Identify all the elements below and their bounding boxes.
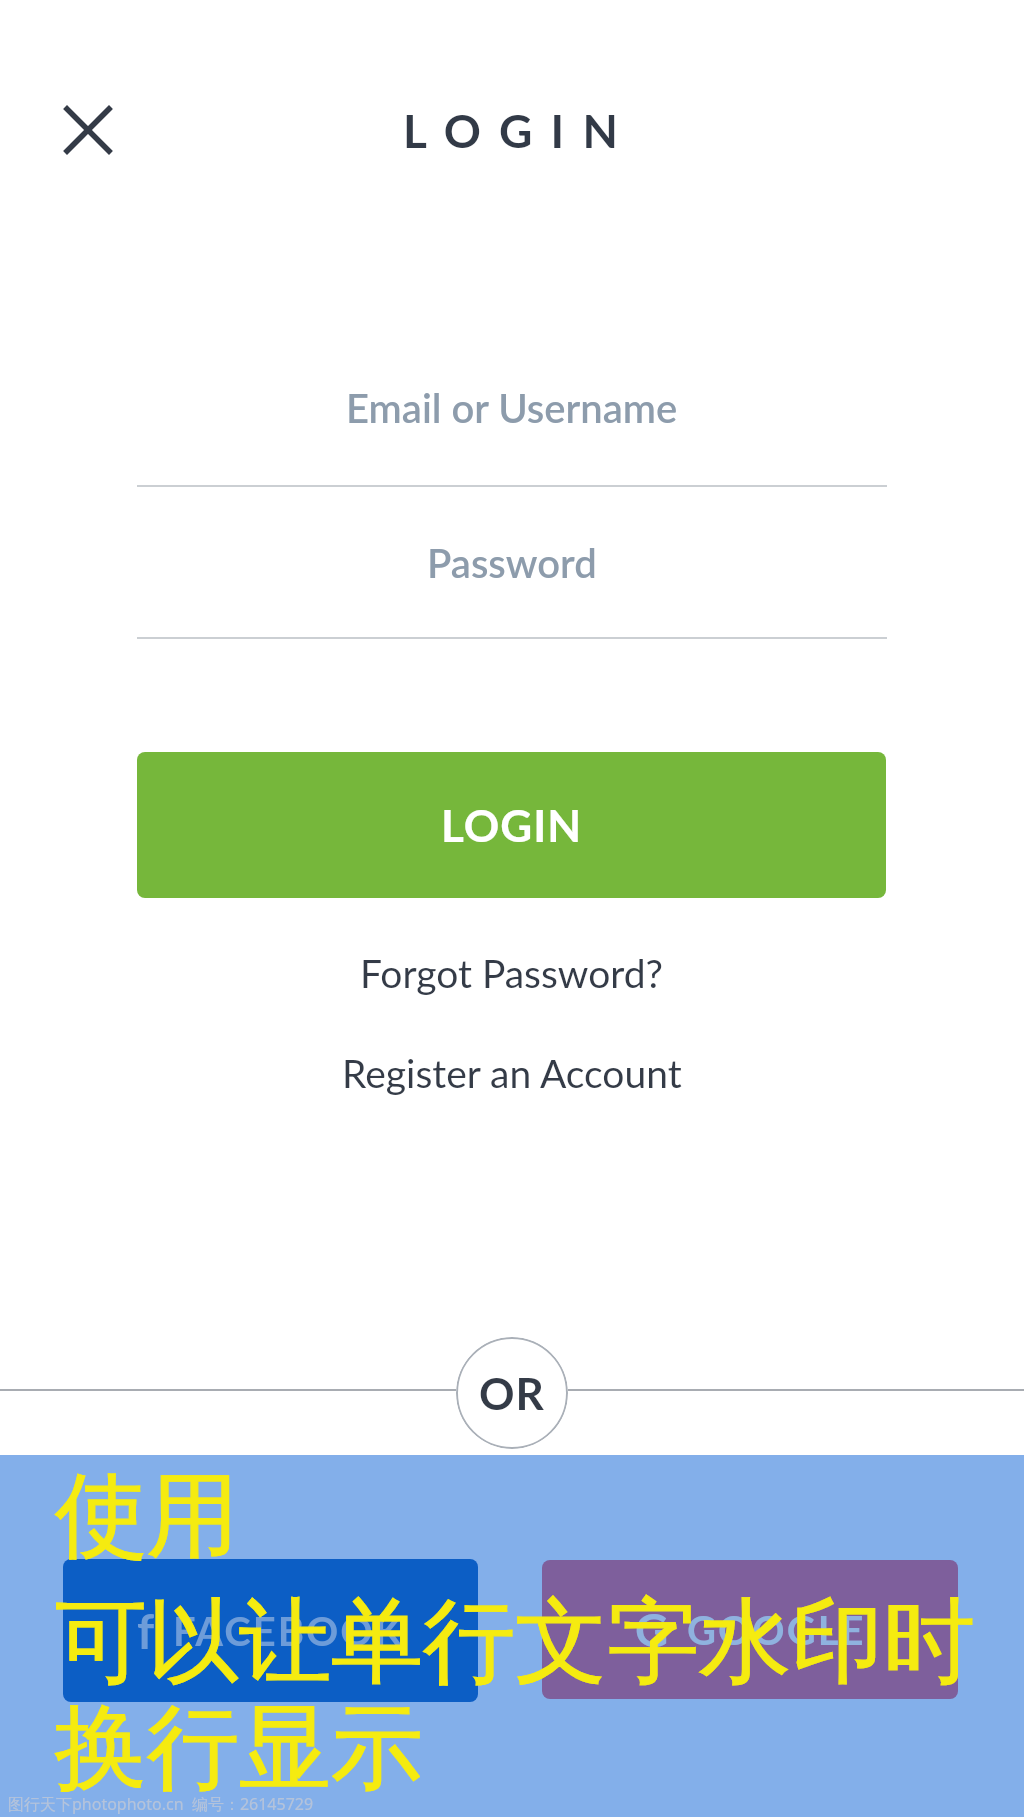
staticText: Password <box>427 539 597 587</box>
staticText: LOGIN <box>441 799 583 852</box>
button[interactable]: G <box>542 1560 958 1699</box>
staticText: f <box>137 1602 155 1660</box>
button[interactable] <box>58 100 118 160</box>
staticText: 使用 <box>55 1458 239 1574</box>
button[interactable]: f <box>63 1559 478 1702</box>
staticText: Forgot Password? <box>360 950 664 997</box>
staticText: FACEBOOK <box>173 1607 405 1655</box>
staticText: 图行天下photophoto.cn 编号：26145729 <box>8 1793 314 1815</box>
staticText: Email or Username <box>346 384 678 432</box>
staticText: 使用 <box>55 1458 239 1574</box>
staticText: OR <box>479 1367 545 1420</box>
button[interactable]: LOGIN <box>137 752 886 898</box>
staticText: L O G I N <box>403 103 622 158</box>
staticText: Register an Account <box>342 1050 682 1097</box>
button[interactable]: Register an Account <box>0 1043 1024 1103</box>
staticText: 可以让单行文字水印时 <box>55 1584 975 1700</box>
staticText: GOOGLE <box>687 1606 866 1654</box>
button[interactable]: Forgot Password? <box>0 943 1024 1003</box>
staticText: 可以让单行文字水印时 <box>55 1584 975 1700</box>
staticText: 换行显示 <box>55 1690 423 1806</box>
staticText: G <box>635 1602 669 1657</box>
staticText: 换行显示 <box>55 1690 423 1806</box>
